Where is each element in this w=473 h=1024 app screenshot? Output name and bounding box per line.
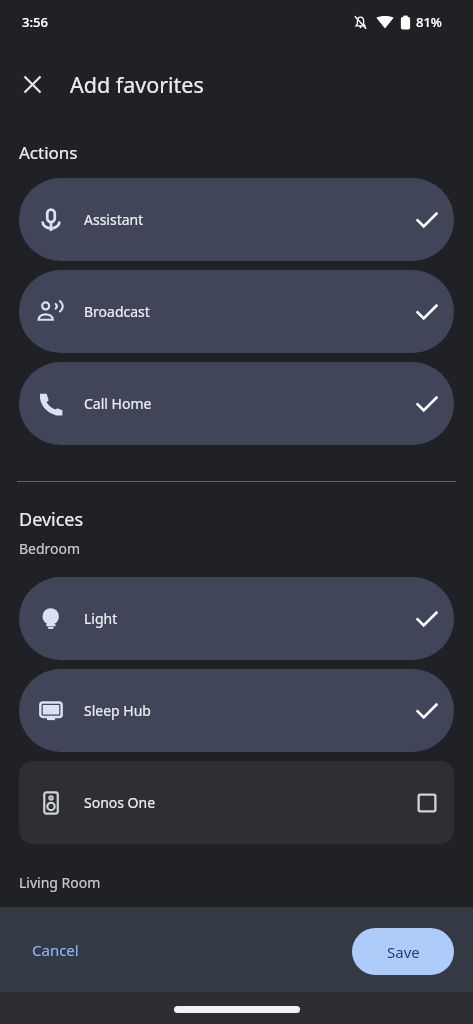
staticText: 81% [416,13,442,31]
staticText: Broadcast [84,302,150,321]
staticText: Sonos One [84,793,156,812]
staticText: Bedroom [19,539,81,558]
button[interactable]: Sonos One [19,761,454,844]
staticText: Actions [19,141,78,164]
staticText: Call Home [84,394,152,413]
staticText: Light [84,609,118,628]
button[interactable]: Sleep Hub [19,669,454,752]
button[interactable]: Light [19,577,454,660]
button[interactable]: Assistant [19,178,454,261]
button[interactable]: Close [8,60,56,108]
staticText: Devices [19,507,84,532]
staticText: Cancel [32,940,79,960]
staticText: Save [387,942,420,962]
staticText: 3:56 [22,13,48,31]
button[interactable]: Broadcast [19,270,454,353]
button[interactable]: Save [352,928,454,975]
staticText: Add favorites [70,70,204,99]
button[interactable]: Cancel [16,930,95,970]
staticText: Living Room [19,873,101,892]
staticText: Assistant [84,210,144,229]
button[interactable]: Call Home [19,362,454,445]
staticText: Sleep Hub [84,701,151,720]
